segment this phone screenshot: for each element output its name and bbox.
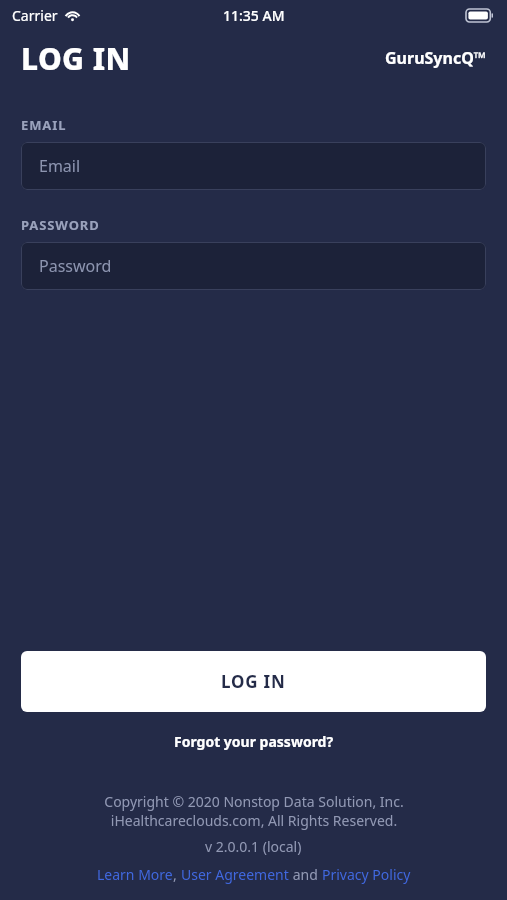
staticText: v 2.0.0.1 (local) (205, 837, 302, 856)
button[interactable]: Email (21, 142, 486, 190)
button[interactable]: LOG IN (21, 651, 486, 712)
staticText: and (289, 865, 322, 884)
other: Wi-Fi signal (64, 9, 81, 22)
staticText: Carrier (12, 6, 58, 25)
button[interactable]: Learn More (97, 865, 173, 884)
staticText: 11:35 AM (223, 6, 285, 25)
staticText: Learn More (97, 865, 173, 884)
button[interactable]: Privacy Policy (322, 865, 411, 884)
button[interactable]: Password (21, 242, 486, 290)
staticText: LOG IN (221, 670, 286, 693)
staticText: Copyright © 2020 Nonstop Data Solution, … (104, 792, 404, 830)
button[interactable]: User Agreement (181, 865, 289, 884)
staticText: Email (39, 155, 81, 177)
staticText: User Agreement (181, 865, 289, 884)
staticText: Privacy Policy (322, 865, 411, 884)
staticText: GuruSyncQ™ (385, 47, 487, 69)
staticText: PASSWORD (21, 216, 100, 234)
staticText: , (173, 865, 181, 884)
staticText: LOG IN (21, 38, 131, 79)
other: Battery full (466, 9, 493, 22)
staticText: Forgot your password? (174, 732, 334, 751)
staticText: EMAIL (21, 116, 67, 134)
staticText: Password (39, 255, 112, 277)
button[interactable]: Forgot your password? (0, 728, 507, 755)
